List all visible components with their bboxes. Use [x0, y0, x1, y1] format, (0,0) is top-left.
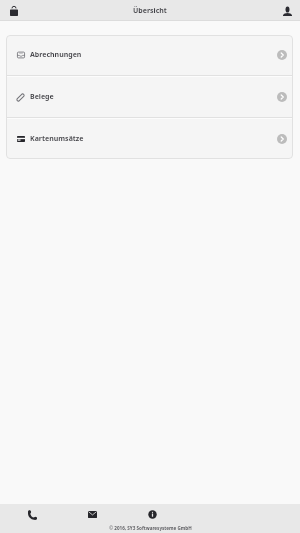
- staticText: © 2016, SY3 Softwaresysteme GmbH: [109, 525, 192, 531]
- button[interactable]: Account: [275, 0, 300, 21]
- staticText: Belege: [30, 92, 54, 102]
- button[interactable]: Mail: [62, 504, 122, 525]
- staticText: Kartenumsätze: [30, 134, 84, 144]
- button[interactable]: Abrechnungen: [6, 35, 293, 75]
- button[interactable]: Info: [122, 504, 182, 525]
- button[interactable]: Shop: [0, 0, 28, 21]
- staticText: Übersicht: [133, 6, 167, 16]
- button[interactable]: Kartenumsätze: [6, 119, 293, 159]
- button[interactable]: Call: [2, 504, 62, 525]
- button[interactable]: Belege: [6, 77, 293, 117]
- staticText: Abrechnungen: [30, 50, 82, 60]
